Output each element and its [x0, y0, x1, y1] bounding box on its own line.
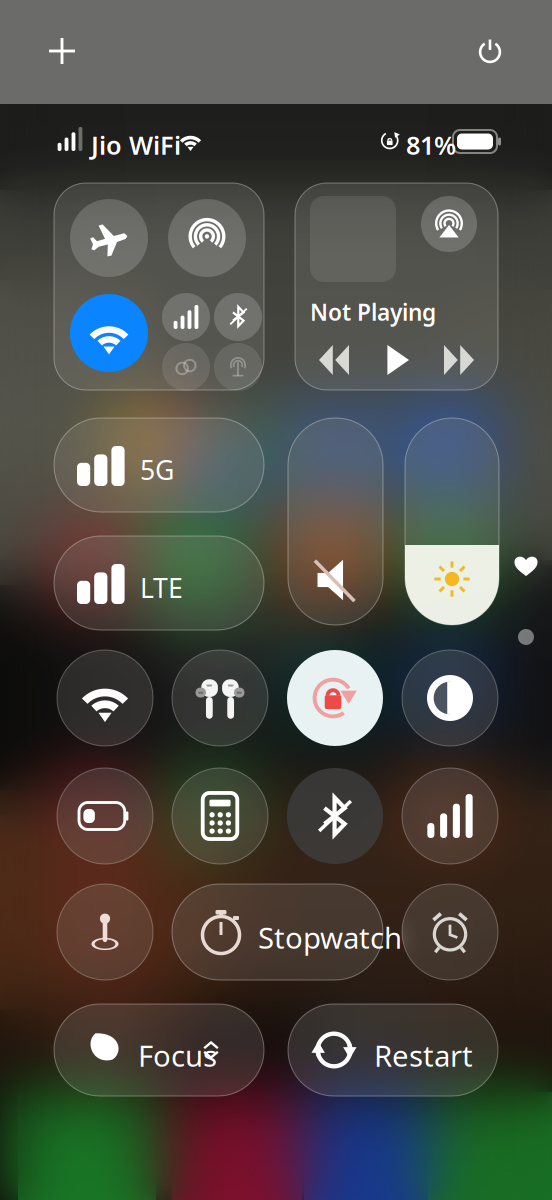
staticText: 81%	[406, 128, 456, 162]
button[interactable]: Previous	[311, 337, 357, 383]
staticText: Jio WiFi	[91, 128, 181, 162]
button[interactable]: AirDrop	[168, 199, 246, 277]
button[interactable]: Dark Mode	[402, 650, 498, 746]
button[interactable]: 5G	[54, 418, 264, 512]
button[interactable]: VPN	[214, 343, 262, 391]
button[interactable]: Focus	[54, 1004, 264, 1096]
button[interactable]: Stopwatch	[172, 884, 383, 980]
button[interactable]: Location	[57, 884, 153, 980]
button[interactable]: Next	[436, 337, 482, 383]
button[interactable]: Alarm	[402, 884, 498, 980]
button[interactable]: AirPlay	[421, 196, 477, 252]
button[interactable]: Rotation Lock	[287, 650, 383, 746]
button[interactable]: Low Power Mode	[57, 768, 153, 864]
button[interactable]: Calculator	[172, 768, 268, 864]
button[interactable]: Personal Hotspot	[162, 343, 210, 391]
button[interactable]: Favourites	[506, 546, 546, 586]
button[interactable]: Volume	[288, 418, 383, 625]
staticText: Not Playing	[310, 297, 436, 327]
button[interactable]: AirPods	[172, 650, 268, 746]
button[interactable]: Airplane Mode	[70, 199, 148, 277]
staticText: Stopwatch	[258, 918, 402, 957]
button[interactable]: Restart	[288, 1004, 498, 1096]
button[interactable]: Wi‑Fi	[70, 294, 148, 372]
button[interactable]: Bluetooth	[214, 293, 262, 341]
staticText: Focus	[138, 1036, 217, 1075]
button[interactable]: Cellular Data	[402, 768, 498, 864]
button[interactable]: Brightness	[405, 418, 499, 625]
button[interactable]: Bluetooth	[287, 768, 383, 864]
button[interactable]: Power	[464, 25, 516, 77]
staticText: 5G	[140, 452, 174, 487]
button[interactable]: Cellular Data	[162, 293, 210, 341]
button[interactable]: Add	[36, 25, 88, 77]
staticText: LTE	[140, 570, 183, 605]
button[interactable]: Play	[374, 337, 420, 383]
staticText: Restart	[374, 1036, 473, 1075]
button[interactable]: Wi‑Fi	[57, 650, 153, 746]
button[interactable]: LTE	[54, 536, 264, 630]
